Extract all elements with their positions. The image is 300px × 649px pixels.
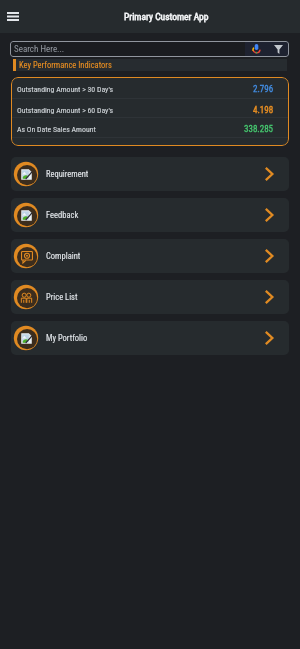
staticText: As On Date Sales Amount	[17, 125, 244, 134]
staticText: Search Here...	[14, 44, 245, 55]
button[interactable]: Feedback	[11, 198, 289, 232]
button[interactable]: Open navigation menu	[2, 6, 23, 27]
button[interactable]: Filter	[267, 41, 289, 57]
staticText: Requirement	[46, 169, 248, 179]
staticText: Complaint	[46, 251, 248, 261]
button[interactable]: Requirement	[11, 157, 289, 191]
button[interactable]: Voice search	[245, 41, 267, 57]
staticText: My Portfolio	[46, 333, 248, 343]
staticText: 2.796	[253, 84, 274, 95]
staticText: Outstanding Amount > 60 Day's	[17, 106, 253, 115]
staticText: Feedback	[46, 210, 248, 220]
staticText: Primary Customer App	[124, 11, 209, 22]
button[interactable]: Complaint	[11, 239, 289, 273]
button[interactable]: My Portfolio	[11, 321, 289, 355]
button[interactable]: Price List	[11, 280, 289, 314]
staticText: Key Performance Indicators	[19, 60, 112, 70]
staticText: Outstanding Amount > 30 Day's	[17, 85, 253, 94]
staticText: 338.285	[244, 124, 274, 135]
staticText: 4.198	[253, 105, 274, 116]
staticText: Price List	[46, 292, 248, 302]
